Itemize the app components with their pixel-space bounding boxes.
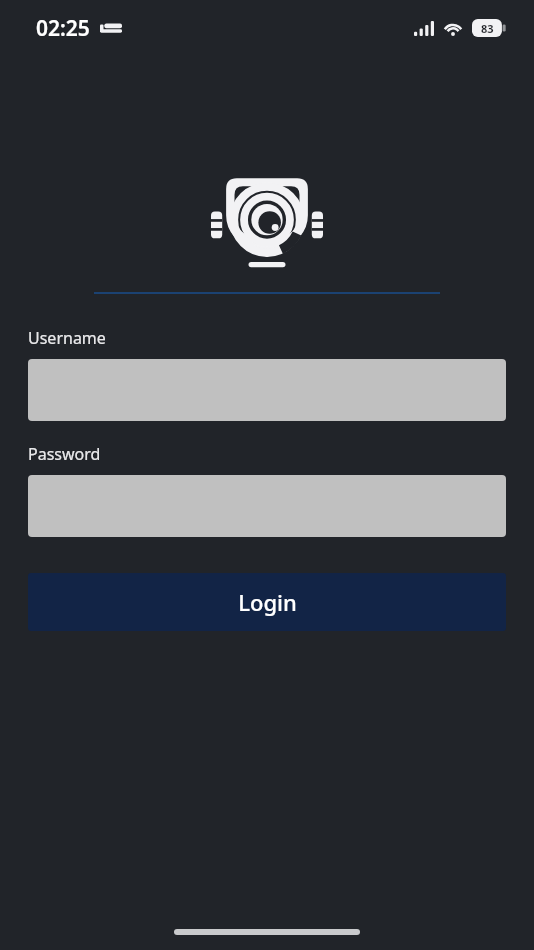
staticText: Login xyxy=(238,587,297,617)
staticText: Password xyxy=(28,443,101,465)
staticText: Username xyxy=(28,327,106,349)
button[interactable]: Login xyxy=(28,573,506,631)
staticText: 02:25 xyxy=(36,14,90,43)
staticText: 83 xyxy=(481,21,494,36)
